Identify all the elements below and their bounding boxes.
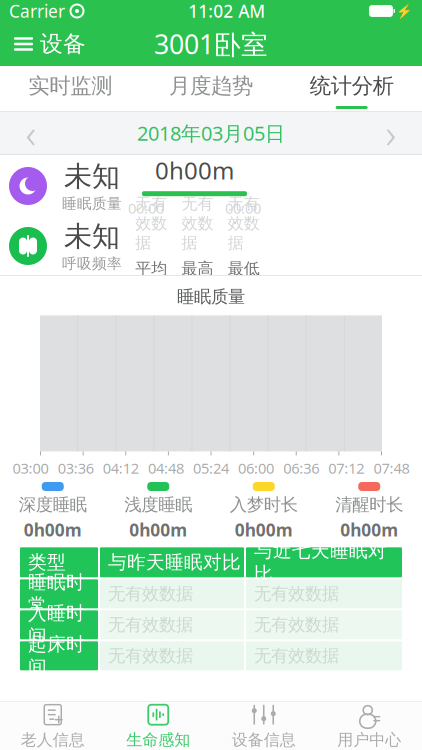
staticText: 06:00	[238, 458, 274, 478]
staticText: 无有效数据	[135, 194, 167, 253]
button[interactable]: 下一天	[360, 112, 422, 154]
staticText: 呼吸频率	[62, 255, 122, 273]
staticText: 05:24	[193, 458, 229, 478]
staticText: 用户中心	[337, 730, 401, 750]
staticText: 浅度睡眠	[124, 494, 192, 515]
staticText: 与昨天睡眠对比	[108, 551, 241, 574]
button[interactable]: 统计分析	[281, 66, 422, 111]
staticText: 月度趋势	[169, 73, 253, 99]
staticText: 00:00	[128, 198, 164, 218]
staticText: 与近七天睡眠对比	[254, 539, 387, 585]
staticText: 0h00m	[24, 518, 82, 541]
staticText: 类型	[28, 551, 66, 574]
staticText: ›	[385, 106, 396, 159]
staticText: 设备	[40, 30, 86, 58]
staticText: 0h00m	[129, 518, 187, 541]
staticText: 06:36	[283, 458, 319, 478]
staticText: 无有效数据	[254, 614, 339, 635]
button[interactable]: 设备信息	[211, 702, 316, 750]
button[interactable]: 生命感知	[105, 702, 211, 750]
staticText: 0h00m	[235, 518, 293, 541]
staticText: 睡眠质量	[62, 195, 122, 213]
staticText: 07:12	[328, 458, 364, 478]
button[interactable]: 月度趋势	[141, 66, 281, 111]
staticText: 无有效数据	[181, 194, 213, 253]
staticText: 2018年03月05日	[137, 120, 285, 146]
button[interactable]: 实时监测	[0, 66, 141, 111]
staticText: 03:00	[13, 458, 49, 478]
staticText: 设备信息	[232, 730, 296, 750]
staticText: ⚡	[396, 3, 413, 19]
staticText: 无有效数据	[228, 194, 260, 253]
staticText: 00:00	[225, 198, 261, 218]
staticText: 03:36	[58, 458, 94, 478]
staticText: 老人信息	[21, 730, 85, 750]
staticText: 无有效数据	[108, 645, 193, 666]
staticText: 睡眠时常	[28, 571, 85, 617]
staticText: 最低频率	[228, 259, 260, 298]
staticText: 07:48	[373, 458, 409, 478]
staticText: 生命感知	[126, 730, 190, 750]
staticText: 统计分析	[310, 73, 394, 99]
staticText: 0h00m	[340, 518, 398, 541]
staticText: 无有效数据	[108, 583, 193, 604]
staticText: 平均频率	[135, 259, 167, 298]
staticText: 最高频率	[181, 259, 213, 298]
staticText: 清醒时长	[335, 494, 403, 515]
button[interactable]: 设备	[0, 22, 100, 66]
staticText: 睡眠质量	[177, 286, 245, 307]
staticText: 实时监测	[28, 73, 112, 99]
staticText: 04:48	[148, 458, 184, 478]
staticText: 深度睡眠	[19, 494, 87, 515]
staticText: 未知	[64, 219, 120, 254]
staticText: 无有效数据	[108, 614, 193, 635]
staticText: ‹	[25, 106, 36, 159]
staticText: 入梦时长	[230, 494, 298, 515]
staticText: 04:12	[103, 458, 139, 478]
button[interactable]: 上一天	[0, 112, 62, 154]
staticText: 起床时间	[28, 633, 85, 679]
staticText: 未知	[64, 159, 120, 194]
button[interactable]: 老人信息	[0, 702, 105, 750]
staticText: 无有效数据	[254, 583, 339, 604]
button[interactable]: 用户中心	[316, 702, 422, 750]
staticText: 入睡时间	[28, 602, 85, 648]
staticText: Carrier	[9, 0, 65, 22]
staticText: 3001卧室	[154, 26, 268, 62]
staticText: 无有效数据	[254, 645, 339, 666]
staticText: 11:02 AM	[188, 0, 265, 22]
staticText: 0h00m	[155, 154, 234, 186]
